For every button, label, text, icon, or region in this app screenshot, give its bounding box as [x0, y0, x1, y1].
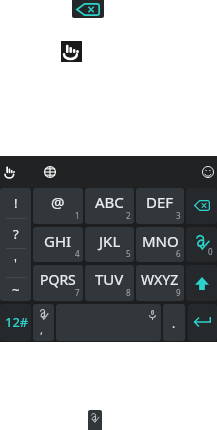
staticText: @: [51, 192, 65, 212]
staticText: 12#: [5, 313, 29, 331]
staticText: 1: [75, 210, 80, 221]
staticText: ~: [12, 281, 20, 299]
button[interactable]: Auto correct comma: [33, 304, 54, 341]
staticText: 5: [126, 248, 131, 259]
button[interactable]: Auto correct: [186, 227, 217, 262]
staticText: JKL: [99, 231, 121, 251]
button[interactable]: Space: [56, 304, 161, 341]
staticText: WXYZ: [141, 270, 179, 289]
button[interactable]: DEF: [136, 188, 184, 224]
staticText: MNO: [142, 231, 179, 251]
button[interactable]: Period: [163, 304, 185, 341]
button[interactable]: Enter: [188, 304, 217, 341]
button[interactable]: Emoji: [195, 159, 217, 185]
button[interactable]: WXYZ: [136, 265, 184, 301]
button[interactable]: TouchPal: [61, 41, 82, 62]
staticText: !: [14, 194, 18, 212]
button[interactable]: Backspace: [186, 188, 217, 224]
staticText: ': [14, 254, 17, 272]
button[interactable]: MNO: [136, 227, 184, 262]
button[interactable]: Switch language: [37, 159, 63, 185]
staticText: ,: [40, 322, 43, 337]
staticText: PQRS: [40, 270, 76, 289]
button[interactable]: Backspace: [72, 0, 104, 18]
button[interactable]: PQRS: [33, 265, 83, 301]
button[interactable]: TouchPal menu: [0, 159, 20, 185]
staticText: 4: [75, 248, 80, 259]
staticText: 6: [176, 248, 181, 259]
staticText: TUV: [95, 269, 124, 289]
button[interactable]: ABC: [85, 188, 134, 224]
staticText: DEF: [146, 192, 174, 212]
staticText: 9: [176, 287, 181, 298]
staticText: GHI: [44, 231, 72, 251]
button[interactable]: Auto correct: [88, 410, 102, 430]
button[interactable]: GHI: [33, 227, 83, 262]
button[interactable]: @: [33, 188, 83, 224]
staticText: 8: [126, 287, 131, 298]
staticText: 2: [126, 210, 131, 221]
button[interactable]: JKL: [85, 227, 134, 262]
button[interactable]: Shift: [186, 265, 217, 301]
staticText: .: [172, 315, 176, 331]
button[interactable]: Numbers and symbols: [0, 304, 31, 341]
staticText: 7: [75, 287, 80, 298]
staticText: 0: [208, 246, 213, 257]
staticText: ABC: [95, 192, 124, 212]
button[interactable]: TUV: [85, 265, 134, 301]
staticText: ?: [13, 225, 19, 243]
staticText: 3: [176, 210, 181, 221]
button[interactable]: Symbols: [0, 188, 31, 301]
